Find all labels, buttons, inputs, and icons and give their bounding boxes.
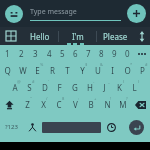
button[interactable]: I'm (59, 27, 96, 45)
button[interactable]: # (135, 62, 150, 79)
staticText: L (132, 82, 137, 93)
button[interactable]: " (19, 96, 35, 113)
button[interactable]: ) (127, 79, 142, 96)
button[interactable]: Clipboard (0, 27, 22, 45)
staticText: 0 (125, 48, 130, 59)
staticText: 9 (112, 48, 117, 59)
button[interactable]: 1 (0, 45, 14, 62)
staticText: M (119, 99, 127, 110)
button[interactable]: 7 (82, 45, 95, 62)
button[interactable]: I (105, 62, 120, 79)
button[interactable]: W (15, 62, 30, 79)
staticText: 7 (86, 48, 91, 59)
staticText: + (94, 96, 97, 101)
staticText: 8 (99, 48, 104, 59)
button[interactable]: 8 (51, 96, 67, 113)
staticText: 3 (33, 48, 38, 59)
button[interactable]: % (30, 62, 45, 79)
button[interactable]: ' (37, 79, 52, 96)
staticText: D (42, 82, 48, 93)
staticText: * (130, 62, 133, 67)
button[interactable]: Emoji (5, 5, 23, 23)
button[interactable]: / (35, 96, 51, 113)
staticText: U (95, 65, 101, 76)
button[interactable]: Hello (22, 27, 58, 45)
staticText: B (88, 99, 94, 110)
button[interactable]: 0 (121, 45, 134, 62)
staticText: ' (48, 79, 49, 84)
staticText: : (78, 96, 80, 101)
staticText: @ (17, 79, 21, 84)
staticText: Please (103, 31, 128, 42)
staticText: S (27, 82, 32, 93)
button[interactable]: Send (129, 120, 144, 135)
staticText: / (46, 96, 48, 101)
button[interactable]: More suggestions (134, 27, 150, 45)
button[interactable]: More symbols (134, 45, 150, 62)
staticText: H (87, 82, 93, 93)
button[interactable]: F (52, 79, 67, 96)
staticText: 6 (73, 48, 78, 59)
staticText: Q (4, 65, 11, 76)
button[interactable]: $ (75, 62, 90, 79)
button[interactable]: ( (112, 79, 127, 96)
button[interactable]: T (60, 62, 75, 79)
staticText: # (145, 62, 148, 67)
staticText: 2 (19, 48, 24, 59)
staticText: W (19, 65, 27, 76)
staticText: ? (126, 96, 128, 101)
button[interactable]: 4 (42, 45, 56, 62)
staticText: 8 (62, 96, 65, 101)
staticText: & (100, 62, 103, 67)
button[interactable]: ?123 (0, 113, 23, 141)
staticText: X (41, 99, 46, 110)
staticText: ! (110, 96, 112, 101)
staticText: C (56, 99, 62, 110)
staticText: - (93, 79, 95, 84)
button[interactable]: : (67, 96, 83, 113)
button[interactable]: 8 (95, 45, 108, 62)
staticText: 4 (47, 48, 52, 59)
button[interactable]: + (83, 96, 99, 113)
button[interactable]: Please (97, 27, 134, 45)
button[interactable]: * (120, 62, 135, 79)
button[interactable]: 5 (56, 45, 69, 62)
button[interactable]: ? (115, 96, 131, 113)
staticText: % (40, 62, 44, 67)
button[interactable]: 3 (28, 45, 42, 62)
button[interactable]: Shift (0, 96, 19, 113)
button[interactable]: 9 (108, 45, 121, 62)
staticText: E (35, 65, 40, 76)
staticText: $ (85, 62, 88, 67)
staticText: V (73, 99, 78, 110)
staticText: R (50, 65, 55, 76)
button[interactable]: & (90, 62, 105, 79)
button[interactable]: Type message (30, 7, 121, 21)
staticText: N (104, 99, 111, 110)
staticText: I'm (72, 31, 84, 42)
button[interactable]: - (82, 79, 97, 96)
staticText: ?123 (5, 123, 18, 131)
button[interactable]: _ (97, 79, 112, 96)
staticText: G (72, 82, 78, 93)
button[interactable]: Add attachment (127, 4, 146, 23)
button[interactable]: ! (99, 96, 115, 113)
staticText: ) (138, 79, 140, 84)
button[interactable]: @ (7, 79, 22, 96)
staticText: # (32, 79, 35, 84)
button[interactable]: Q (0, 62, 15, 79)
staticText: Hello (30, 31, 50, 42)
button[interactable]: R (45, 62, 60, 79)
button[interactable]: # (22, 79, 37, 96)
button[interactable]: Switch input method (23, 113, 42, 141)
button[interactable]: Recent (101, 113, 122, 141)
button[interactable]: 6 (69, 45, 82, 62)
button[interactable]: Backspace (131, 96, 150, 113)
button[interactable]: G (67, 79, 82, 96)
staticText: A (12, 82, 18, 93)
button[interactable]: 2 (14, 45, 28, 62)
staticText: Z (25, 99, 30, 110)
staticText: Y (80, 65, 85, 76)
staticText: _ (108, 79, 110, 84)
